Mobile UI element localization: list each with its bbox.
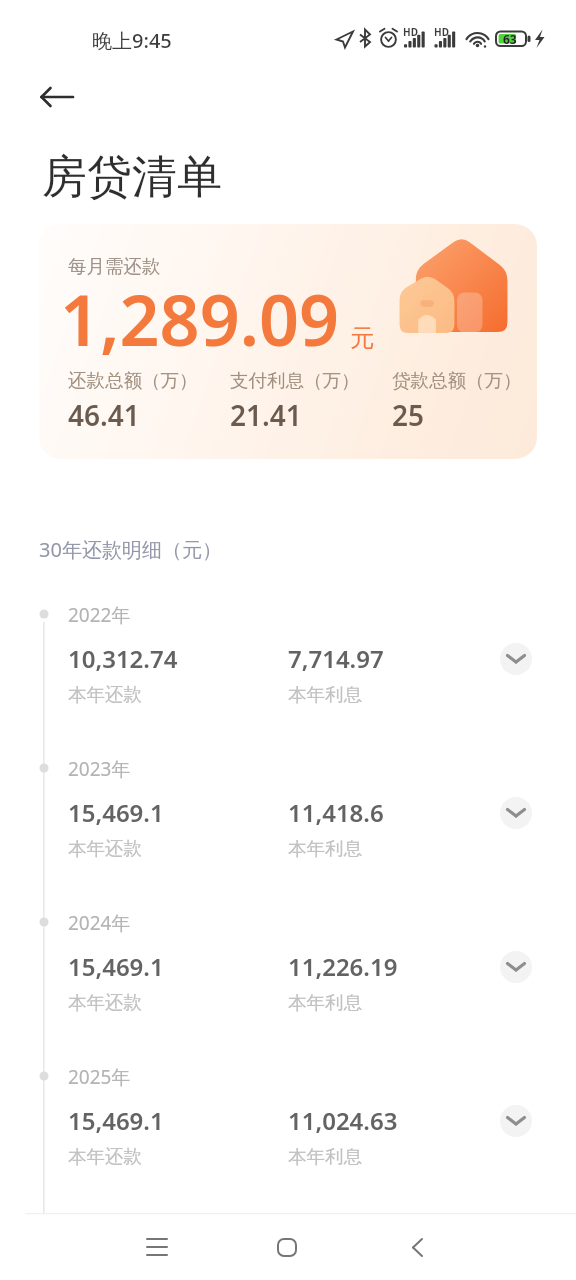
staticText: 2025年 <box>68 1064 131 1090</box>
staticText: 本年还款 <box>68 837 142 860</box>
staticText: 15,469.1 <box>68 1104 164 1137</box>
button[interactable]: Expand year details <box>500 951 532 983</box>
button[interactable]: Expand year details <box>500 1105 532 1137</box>
staticText: 7,714.97 <box>288 642 384 675</box>
staticText: 15,469.1 <box>68 796 164 829</box>
staticText: 每月需还款 <box>68 255 161 278</box>
staticText: 1,289.09 <box>60 271 340 366</box>
staticText: 本年还款 <box>68 1145 142 1168</box>
button[interactable]: Home <box>255 1215 319 1279</box>
staticText: 2022年 <box>68 602 131 628</box>
staticText: 11,024.63 <box>288 1104 398 1137</box>
staticText: 本年利息 <box>288 683 362 706</box>
staticText: 本年利息 <box>288 1145 362 1168</box>
button[interactable]: Back <box>33 73 81 121</box>
button[interactable]: Expand year details <box>500 797 532 829</box>
button[interactable]: 2022年 <box>0 580 576 730</box>
button[interactable]: 2024年 <box>0 888 576 1038</box>
button[interactable]: Back <box>385 1215 449 1279</box>
staticText: 支付利息（万） <box>230 369 360 392</box>
staticText: 晚上9:45 <box>92 27 172 54</box>
button[interactable]: Recent apps <box>125 1215 189 1279</box>
staticText: 11,418.6 <box>288 796 384 829</box>
staticText: HD <box>403 25 418 39</box>
staticText: 2024年 <box>68 910 131 936</box>
staticText: 本年还款 <box>68 683 142 706</box>
staticText: 本年利息 <box>288 991 362 1014</box>
staticText: 30年还款明细（元） <box>39 536 222 563</box>
staticText: 贷款总额（万） <box>392 369 522 392</box>
staticText: 25 <box>392 396 425 434</box>
staticText: 15,469.1 <box>68 950 164 983</box>
staticText: 本年还款 <box>68 991 142 1014</box>
button[interactable]: 每月需还款 <box>39 224 537 459</box>
staticText: 10,312.74 <box>68 642 178 675</box>
button[interactable]: 2023年 <box>0 734 576 884</box>
staticText: 2023年 <box>68 756 131 782</box>
staticText: 63 <box>503 31 517 47</box>
staticText: 本年利息 <box>288 837 362 860</box>
staticText: 46.41 <box>68 396 140 434</box>
staticText: 元 <box>350 323 374 353</box>
staticText: 还款总额（万） <box>68 369 198 392</box>
staticText: HD <box>434 25 449 39</box>
staticText: 21.41 <box>230 396 302 434</box>
button[interactable]: 2025年 <box>0 1042 576 1192</box>
button[interactable]: Expand year details <box>500 643 532 675</box>
staticText: 11,226.19 <box>288 950 398 983</box>
staticText: 房贷清单 <box>42 149 222 206</box>
